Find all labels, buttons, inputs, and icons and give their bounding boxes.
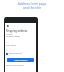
staticText: and the title xyxy=(0,6,64,10)
button[interactable]: Save address xyxy=(6,52,22,55)
staticText: Country xyxy=(6,33,13,35)
button[interactable]: Country xyxy=(6,33,22,38)
staticText: Shipping address xyxy=(6,29,28,33)
staticText: Save address xyxy=(9,52,22,55)
button[interactable]: Terms and privacy xyxy=(6,64,24,67)
staticText: Address form page xyxy=(0,2,64,6)
button[interactable]: Full name xyxy=(6,44,17,47)
staticText: United States xyxy=(6,35,20,38)
button[interactable]: Back xyxy=(6,24,9,27)
button[interactable]: Save address xyxy=(7,58,34,62)
staticText: Save address xyxy=(14,59,28,62)
